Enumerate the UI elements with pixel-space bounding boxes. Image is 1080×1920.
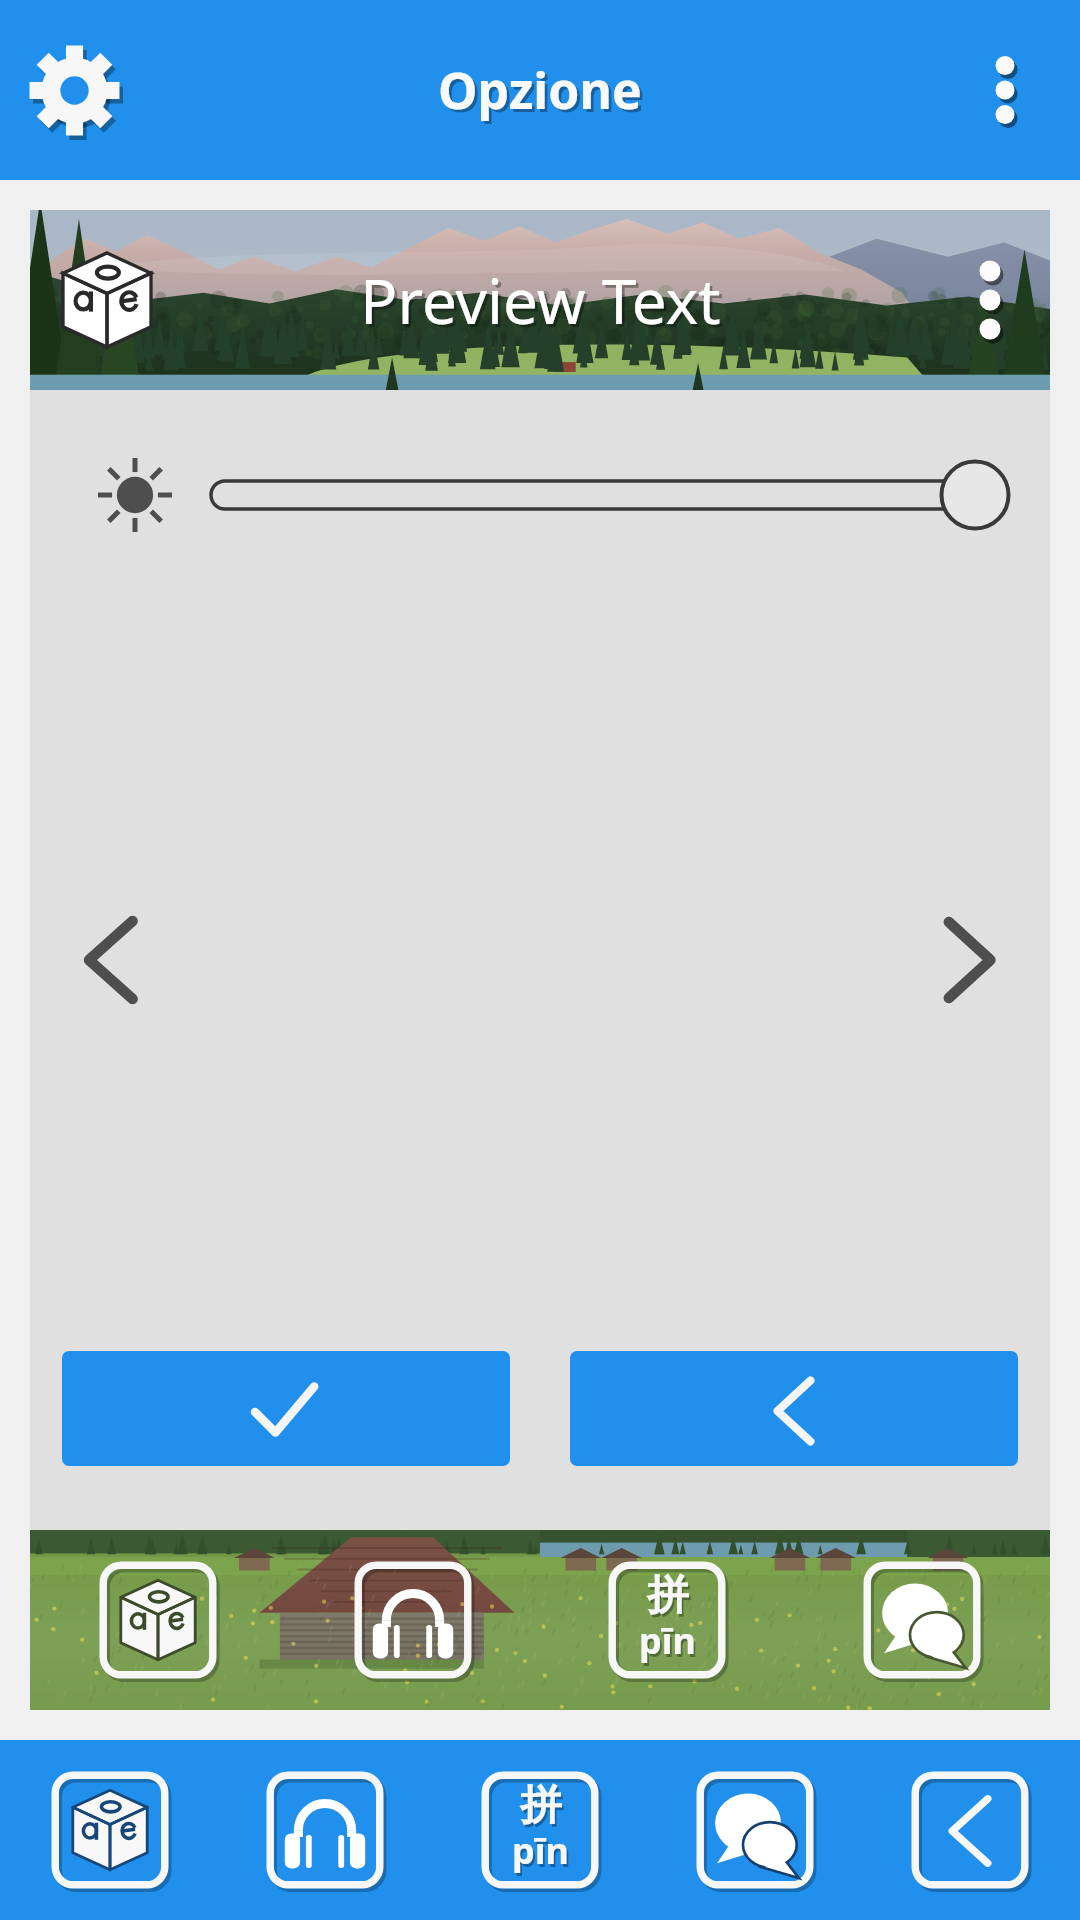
staticText: 拼 — [522, 1782, 564, 1834]
button[interactable]: More options — [945, 30, 1065, 150]
staticText: pīn — [641, 1619, 698, 1668]
button[interactable]: Pinyin — [480, 1770, 600, 1890]
button[interactable]: Preview Text — [30, 210, 1050, 390]
staticText: pīn — [514, 1829, 571, 1878]
button[interactable]: Back — [910, 1770, 1030, 1890]
button[interactable] — [30, 390, 1050, 600]
button[interactable]: Settings — [10, 25, 140, 155]
button[interactable]: Previous — [30, 885, 180, 1035]
staticText: Opzione — [441, 59, 645, 127]
staticText: 拼 — [647, 1569, 689, 1621]
button[interactable]: Back — [570, 1351, 1018, 1466]
staticText: pīn — [639, 1616, 696, 1665]
button[interactable]: Audio — [265, 1770, 385, 1890]
staticText: 拼 — [520, 1779, 562, 1831]
staticText: Opzione — [438, 56, 642, 124]
button[interactable]: Alphabet cube — [98, 1560, 218, 1680]
button[interactable]: Chat — [695, 1770, 815, 1890]
staticText: pīn — [512, 1826, 569, 1875]
button[interactable]: Chat — [862, 1560, 982, 1680]
button[interactable]: Confirm — [62, 1351, 510, 1466]
button[interactable]: Next — [900, 885, 1050, 1035]
button[interactable]: Audio — [353, 1560, 473, 1680]
staticText: 拼 — [649, 1572, 691, 1624]
staticText: Preview Text — [363, 261, 724, 345]
staticText: Preview Text — [360, 258, 721, 342]
button[interactable]: Preview options — [930, 240, 1050, 360]
button[interactable]: Alphabet cube — [50, 1770, 170, 1890]
button[interactable]: Pinyin — [607, 1560, 727, 1680]
